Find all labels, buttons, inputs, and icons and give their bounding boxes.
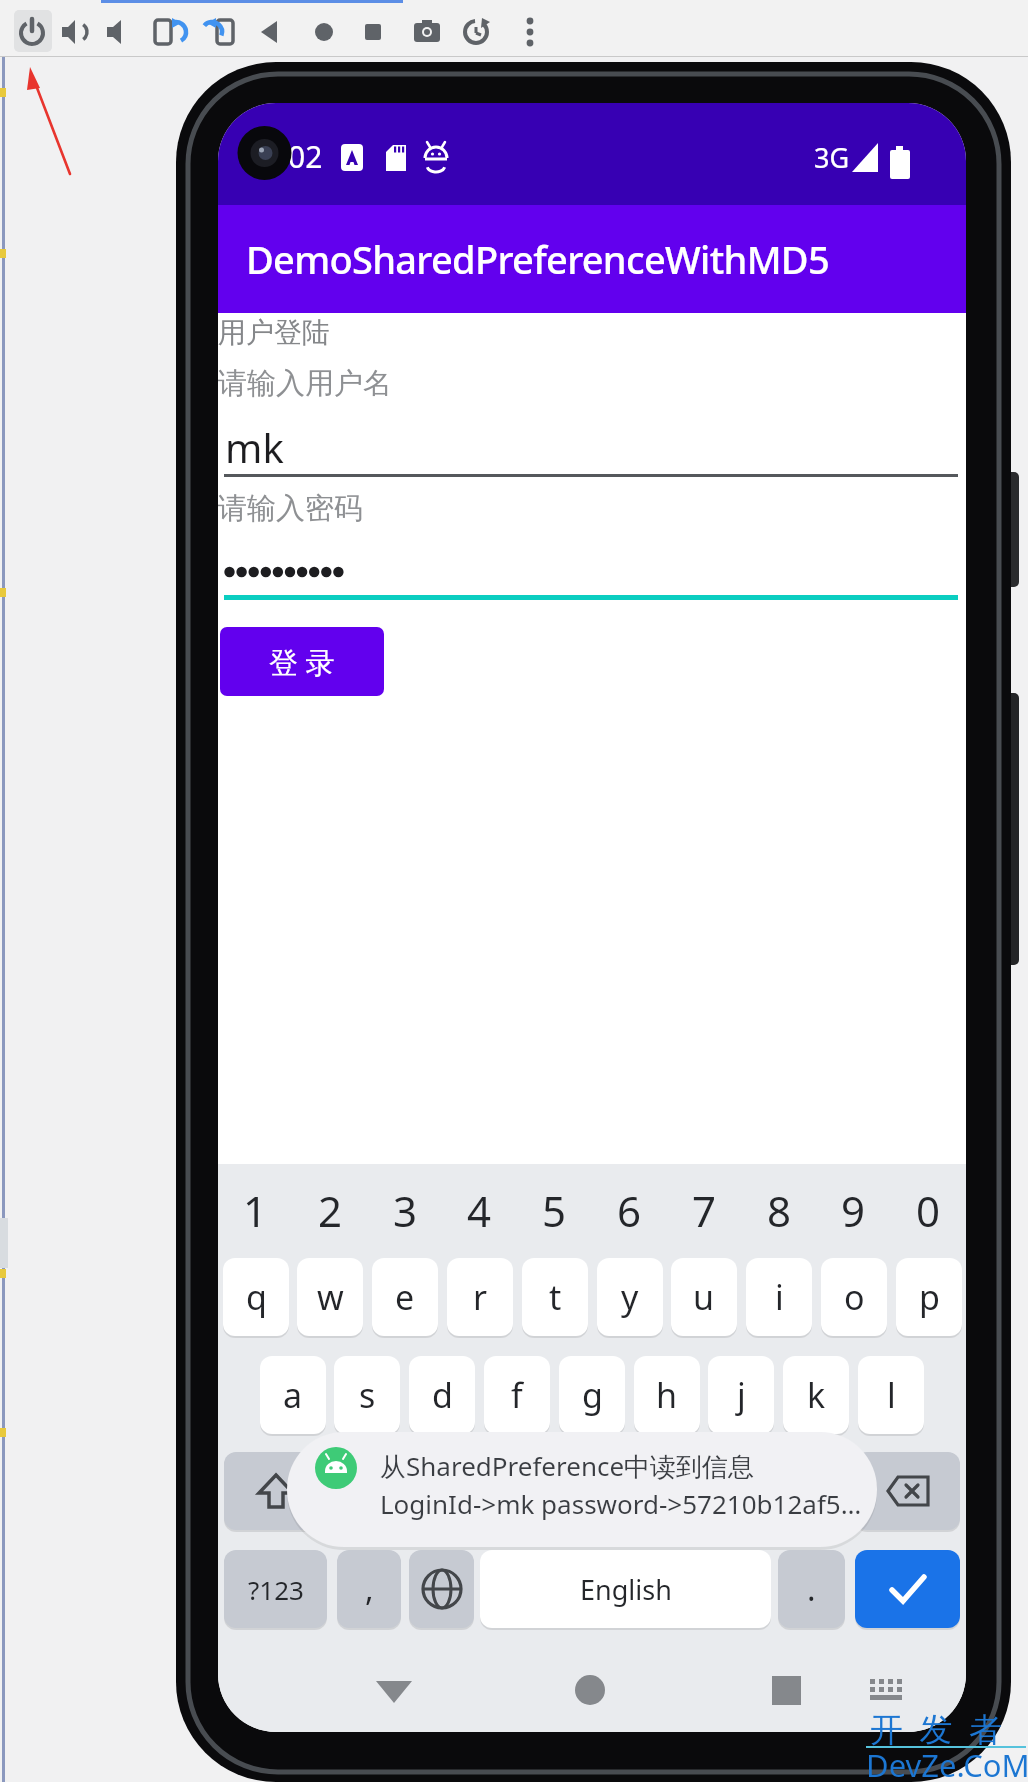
button[interactable] [250, 11, 290, 53]
button[interactable]: y [597, 1258, 663, 1336]
button[interactable]: , [337, 1550, 401, 1628]
staticText: 请输入用户名 [218, 365, 392, 402]
button[interactable]: h [634, 1356, 700, 1434]
button[interactable]: o [821, 1258, 887, 1336]
staticText: 开 发 者 [870, 1706, 1007, 1751]
button[interactable]: z [335, 1452, 401, 1530]
staticText: 用户登陆 [218, 315, 330, 350]
button[interactable]: n [709, 1452, 775, 1530]
staticText: h [656, 1372, 678, 1418]
staticText: 02 [288, 136, 323, 177]
button[interactable]: j [708, 1356, 774, 1434]
staticText: , [365, 1567, 374, 1611]
staticText: n [731, 1468, 753, 1514]
button[interactable] [198, 11, 238, 53]
button[interactable] [304, 11, 344, 53]
button[interactable] [54, 11, 94, 53]
button[interactable]: 6 [596, 1178, 663, 1242]
button[interactable] [855, 1550, 960, 1628]
staticText: 从SharedPreference中读到信息 [380, 1448, 755, 1484]
staticText: 8 [767, 1182, 792, 1239]
button[interactable] [372, 1673, 416, 1713]
button[interactable]: x [409, 1452, 475, 1530]
button[interactable] [768, 1670, 806, 1708]
staticText: l [887, 1372, 896, 1418]
button[interactable] [353, 11, 393, 53]
button[interactable]: a [260, 1356, 326, 1434]
button[interactable] [407, 11, 447, 53]
button[interactable] [568, 1668, 612, 1712]
button[interactable]: d [409, 1356, 475, 1434]
staticText: q [246, 1274, 267, 1320]
button[interactable]: t [522, 1258, 588, 1336]
button[interactable] [224, 1452, 327, 1530]
button[interactable]: g [559, 1356, 625, 1434]
staticText: a [283, 1372, 303, 1418]
button[interactable] [855, 1452, 960, 1530]
staticText: j [737, 1372, 746, 1418]
staticText: s [359, 1372, 376, 1418]
button[interactable] [150, 11, 190, 53]
button[interactable]: u [671, 1258, 737, 1336]
button[interactable] [97, 11, 137, 53]
button[interactable]: 2 [297, 1178, 364, 1242]
staticText: . [807, 1567, 816, 1611]
staticText: 6 [617, 1182, 642, 1239]
button[interactable]: 3 [372, 1178, 439, 1242]
staticText: DevZe.CoM [866, 1744, 1028, 1782]
button[interactable]: q [223, 1258, 289, 1336]
button[interactable]: 8 [746, 1178, 813, 1242]
staticText: 登 录 [269, 642, 335, 682]
button[interactable] [866, 1671, 906, 1705]
button[interactable]: w [297, 1258, 363, 1336]
staticText: r [473, 1274, 488, 1320]
staticText: i [775, 1274, 784, 1320]
staticText: 2 [318, 1182, 343, 1239]
button[interactable]: 5 [521, 1178, 588, 1242]
button[interactable]: i [746, 1258, 812, 1336]
staticText: 1 [243, 1182, 268, 1239]
button[interactable]: k [783, 1356, 849, 1434]
staticText: m [800, 1468, 832, 1514]
button[interactable]: ?123 [224, 1550, 327, 1628]
button[interactable] [409, 1550, 474, 1628]
staticText: 0 [916, 1182, 941, 1239]
button[interactable]: 4 [446, 1178, 513, 1242]
staticText: LoginId->mk password->57210b12af5… [380, 1486, 862, 1521]
staticText: 9 [841, 1182, 866, 1239]
button[interactable]: p [896, 1258, 962, 1336]
button[interactable]: e [372, 1258, 438, 1336]
button[interactable]: s [334, 1356, 400, 1434]
button[interactable]: 9 [820, 1178, 887, 1242]
button[interactable]: 7 [671, 1178, 738, 1242]
button[interactable]: English [480, 1550, 771, 1628]
button[interactable]: 1 [222, 1178, 289, 1242]
button[interactable]: . [778, 1550, 845, 1628]
staticText: d [432, 1372, 453, 1418]
button[interactable]: r [447, 1258, 513, 1336]
staticText: g [582, 1372, 603, 1418]
button[interactable] [456, 11, 496, 53]
button[interactable]: 0 [895, 1178, 962, 1242]
staticText: 5 [542, 1182, 567, 1239]
staticText: f [511, 1372, 523, 1418]
button[interactable]: f [484, 1356, 550, 1434]
staticText: ?123 [248, 1572, 304, 1607]
button[interactable]: 登 录 [220, 627, 384, 696]
button[interactable]: b [634, 1452, 700, 1530]
staticText: u [693, 1274, 715, 1320]
staticText: x [433, 1468, 451, 1514]
staticText: p [919, 1274, 940, 1320]
button[interactable]: v [559, 1452, 625, 1530]
button[interactable]: c [484, 1452, 550, 1530]
button[interactable] [510, 11, 550, 53]
staticText: DemoSharedPreferenceWithMD5 [246, 233, 829, 285]
button[interactable] [14, 10, 52, 52]
staticText: c [509, 1468, 526, 1514]
button[interactable]: m [783, 1452, 849, 1530]
staticText: b [657, 1468, 678, 1514]
button[interactable] [12, 11, 52, 53]
button[interactable]: l [858, 1356, 924, 1434]
staticText: 4 [467, 1182, 492, 1239]
